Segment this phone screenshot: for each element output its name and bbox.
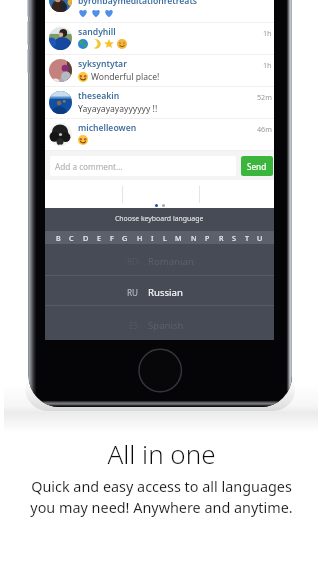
button[interactable]: RU bbox=[45, 275, 274, 306]
staticText: 46m bbox=[257, 124, 272, 134]
staticText: Send bbox=[247, 161, 267, 172]
staticText: F bbox=[110, 233, 114, 243]
staticText: Choose keyboard language bbox=[115, 214, 204, 223]
button[interactable]: sandyhill bbox=[45, 23, 274, 55]
staticText: Add a comment... bbox=[55, 161, 123, 172]
button[interactable]: michelleowen bbox=[45, 119, 274, 151]
staticText: H bbox=[137, 233, 143, 243]
staticText: C bbox=[69, 233, 74, 243]
staticText: Wonderful place! bbox=[91, 71, 160, 83]
staticText: byronbaymeditationretreats bbox=[78, 0, 198, 7]
staticText: P bbox=[205, 233, 210, 243]
button[interactable]: Add a comment... bbox=[50, 156, 236, 176]
staticText: R bbox=[219, 233, 224, 243]
staticText: michelleowen bbox=[78, 122, 137, 134]
button[interactable]: syksyntytar bbox=[45, 55, 274, 87]
staticText: sandyhill bbox=[78, 26, 116, 38]
staticText: U bbox=[257, 233, 263, 243]
staticText: Yayayayayayyyyyy !! bbox=[78, 103, 158, 115]
staticText: S bbox=[232, 233, 236, 243]
staticText: D bbox=[83, 233, 89, 243]
staticText: RO bbox=[127, 256, 139, 267]
staticText: Russian bbox=[148, 286, 183, 299]
staticText: M bbox=[175, 233, 182, 243]
staticText: I bbox=[151, 233, 154, 243]
staticText: All in one bbox=[107, 436, 216, 471]
staticText: Spanish bbox=[148, 319, 184, 332]
staticText: 1h bbox=[263, 60, 272, 70]
staticText: syksyntytar bbox=[78, 58, 127, 70]
staticText: Quick and easy access to all languages y… bbox=[30, 477, 293, 517]
button[interactable]: theseakin bbox=[45, 87, 274, 119]
staticText: E bbox=[97, 233, 101, 243]
staticText: 1h bbox=[263, 28, 272, 38]
staticText: N bbox=[191, 233, 197, 243]
staticText: theseakin bbox=[78, 90, 120, 102]
staticText: 52m bbox=[257, 92, 272, 102]
staticText: RU bbox=[127, 287, 139, 298]
staticText: Romanian bbox=[148, 255, 194, 268]
staticText: ES bbox=[129, 320, 139, 331]
button[interactable]: byronbaymeditationretreats bbox=[45, 0, 274, 23]
staticText: B bbox=[56, 233, 61, 243]
staticText: L bbox=[163, 233, 167, 243]
button[interactable]: Send bbox=[241, 156, 273, 176]
staticText: T bbox=[245, 233, 249, 243]
staticText: G bbox=[122, 233, 128, 243]
